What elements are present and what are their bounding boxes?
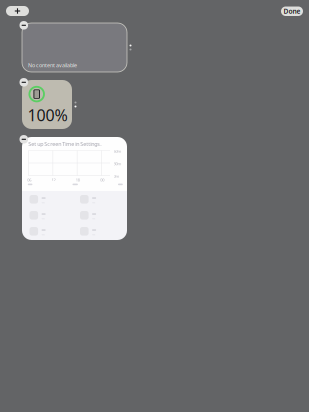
button[interactable]: Remove widget: [19, 21, 28, 30]
staticText: 0m: [113, 174, 119, 179]
staticText: 18: [76, 177, 80, 182]
staticText: Set up Screen Time in Settings.: [28, 140, 101, 147]
button[interactable]: Remove widget: [19, 135, 28, 144]
staticText: 60m: [113, 149, 121, 154]
staticText: 06: [27, 177, 31, 182]
button[interactable]: Remove widget: [19, 78, 28, 87]
button[interactable]: Done: [281, 6, 303, 16]
staticText: 12: [51, 177, 55, 182]
button[interactable]: Add widget: [6, 6, 29, 16]
staticText: No content available: [28, 62, 77, 69]
staticText: 30m: [113, 161, 121, 166]
staticText: 100%: [27, 104, 67, 126]
staticText: 00: [100, 177, 104, 182]
staticText: Done: [283, 7, 300, 16]
